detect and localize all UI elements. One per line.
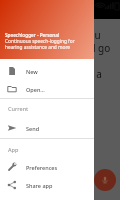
staticText: Speechlogger - Personal — [5, 32, 60, 38]
button[interactable]: Send — [0, 119, 94, 137]
button[interactable]: New — [0, 62, 94, 80]
button[interactable]: Open... — [0, 80, 94, 98]
staticText: Share app — [26, 182, 53, 189]
staticText: App — [8, 146, 19, 153]
staticText: Send — [26, 125, 40, 132]
staticText: in the background. a — [5, 67, 102, 81]
staticText: phone, logging will go — [6, 41, 111, 55]
staticText: Press the mic to you — [6, 28, 101, 42]
button[interactable]: Preferences — [0, 158, 94, 176]
button[interactable]: Record — [94, 169, 116, 191]
staticText: New — [26, 68, 38, 75]
staticText: Continuous speech-logging for hearing as… — [5, 38, 75, 50]
staticText: Open... — [26, 86, 45, 93]
staticText: Current — [8, 105, 29, 112]
button[interactable]: Share app — [0, 176, 94, 194]
staticText: on automatically — [4, 54, 83, 68]
staticText: Preferences — [26, 164, 58, 171]
